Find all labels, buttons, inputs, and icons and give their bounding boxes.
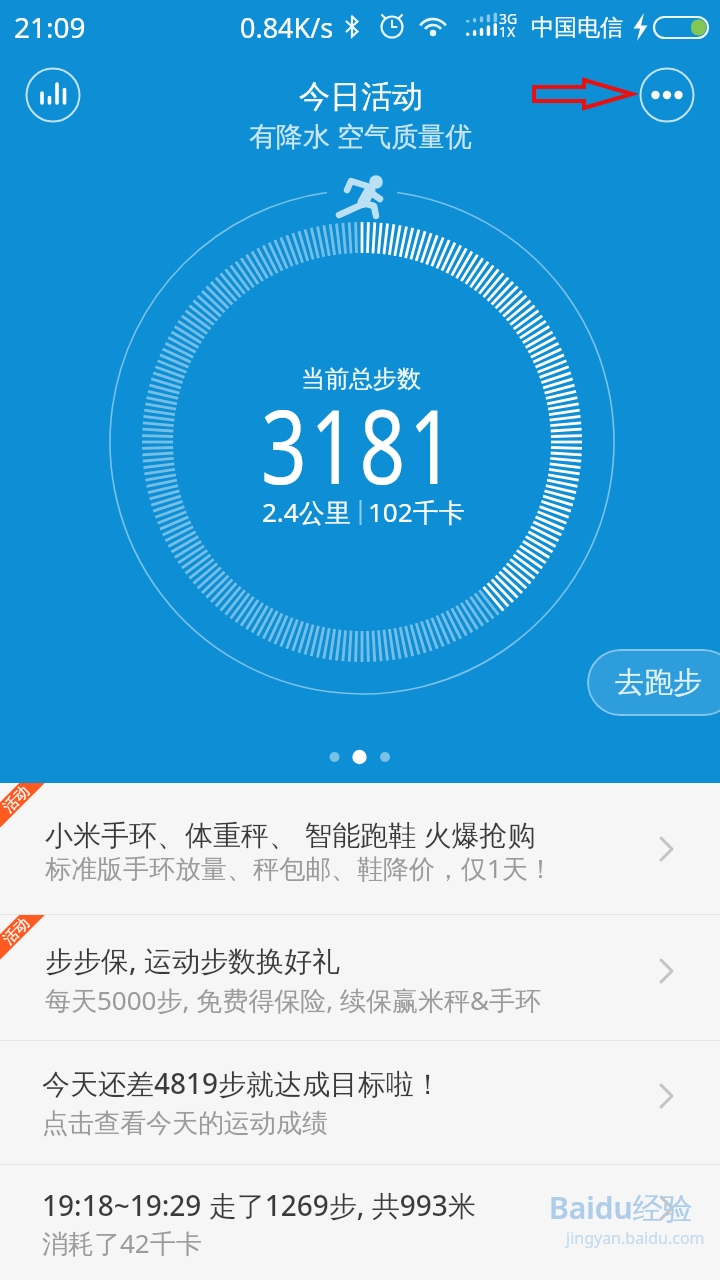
staticText: 0.84K/s — [240, 9, 334, 46]
button[interactable] — [0, 1165, 720, 1280]
staticText: 标准版手环放量、秤包邮、鞋降价，仅1天！ — [45, 850, 554, 886]
staticText: 19:18~19:29 走了1269步, 共993米 — [42, 1186, 476, 1224]
staticText: 小米手环、体重秤、 智能跑鞋 火爆抢购 — [45, 815, 536, 853]
button[interactable] — [640, 68, 694, 122]
staticText: 活动 — [0, 915, 33, 948]
staticText: 中国电信 — [531, 13, 623, 42]
staticText: 消耗了42千卡 — [42, 1225, 202, 1261]
staticText: 2.4公里 — [262, 494, 351, 530]
staticText: 3G — [499, 9, 518, 28]
staticText: 当前总步数 — [301, 364, 421, 394]
staticText: 3181 — [261, 374, 459, 513]
staticText: 每天5000步, 免费得保险, 续保赢米秤&手环 — [45, 982, 541, 1018]
staticText: jingyan.baidu.com — [566, 1227, 705, 1249]
button[interactable]: 活动 — [0, 915, 720, 1041]
staticText: 去跑步 — [615, 664, 702, 701]
staticText: 102千卡 — [368, 494, 465, 530]
staticText: Baidu经验 — [549, 1187, 693, 1228]
button[interactable] — [26, 68, 80, 122]
button[interactable] — [0, 1041, 720, 1165]
staticText: 21:09 — [14, 8, 86, 46]
staticText: 今日活动 — [299, 77, 423, 116]
staticText: 步步保, 运动步数换好礼 — [45, 941, 340, 979]
button[interactable]: 活动 — [0, 783, 720, 915]
button[interactable]: 去跑步 — [587, 649, 720, 716]
staticText: 今天还差4819步就达成目标啦！ — [42, 1064, 443, 1102]
staticText: 有降水 空气质量优 — [249, 117, 473, 154]
staticText: 1X — [499, 22, 516, 41]
staticText: 点击查看今天的运动成绩 — [42, 1107, 328, 1140]
staticText: 活动 — [0, 783, 33, 816]
